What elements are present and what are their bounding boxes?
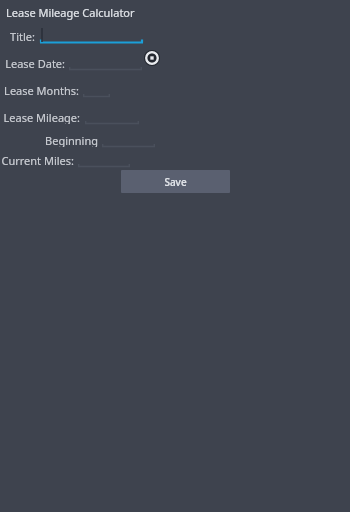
staticText: Lease Mileage: bbox=[3, 110, 80, 124]
staticText: Save bbox=[164, 175, 187, 189]
button[interactable]: Lease Months: bbox=[83, 82, 110, 98]
button[interactable]: Current Miles: bbox=[78, 152, 130, 168]
button[interactable]: Title: bbox=[40, 28, 143, 44]
staticText: Current Miles: bbox=[1, 153, 74, 167]
button[interactable]: Save bbox=[121, 170, 230, 193]
staticText: Title: bbox=[10, 29, 35, 43]
button[interactable]: Pick lease date bbox=[144, 50, 160, 66]
staticText: Lease Mileage Calculator bbox=[6, 5, 135, 20]
staticText: Lease Months: bbox=[4, 83, 79, 97]
staticText: Beginning Mileage: bbox=[0, 133, 98, 147]
button[interactable]: Lease Mileage: bbox=[85, 109, 139, 125]
button[interactable]: Lease Date: bbox=[69, 55, 142, 71]
button[interactable]: Beginning Mileage: bbox=[102, 132, 155, 148]
staticText: Lease Date: bbox=[5, 56, 65, 70]
